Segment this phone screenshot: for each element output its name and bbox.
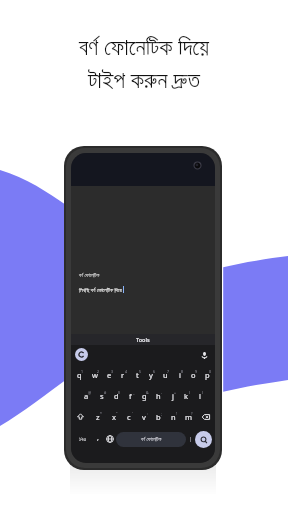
staticText: t [136, 370, 139, 380]
staticText: 5 [139, 369, 142, 374]
staticText: 6 [153, 369, 156, 374]
staticText: 3 [111, 369, 114, 374]
button[interactable]: ? [181, 406, 196, 427]
staticText: l [199, 391, 201, 401]
button[interactable]: + [165, 385, 179, 406]
button[interactable]: 5 [130, 364, 144, 385]
button[interactable]: 1 [72, 364, 87, 385]
staticText: q [77, 370, 82, 380]
staticText: ; [161, 411, 162, 416]
staticText: 0 [209, 369, 212, 374]
staticText: 2 [97, 369, 100, 374]
staticText: বর্ণ ফোনেটিক [141, 436, 162, 443]
button[interactable]: Backspace [196, 406, 215, 427]
staticText: বর্ণ ফোনেটিক দিয়ে [79, 30, 209, 61]
staticText: f [129, 391, 132, 401]
button[interactable]: _ [123, 385, 137, 406]
staticText: $ [118, 390, 121, 395]
staticText: w [92, 370, 98, 380]
staticText: h [156, 391, 161, 401]
staticText: c [127, 412, 131, 422]
staticText: " [116, 411, 118, 416]
staticText: বর্ণ ফোনেটিক [79, 272, 100, 279]
staticText: ! [176, 411, 177, 416]
staticText: _ [133, 390, 135, 395]
staticText: i [179, 370, 181, 380]
button[interactable]: Search [195, 431, 212, 448]
button[interactable]: 7 [158, 364, 172, 385]
button[interactable]: & [137, 385, 151, 406]
staticText: x [112, 412, 116, 422]
staticText: @ [88, 390, 92, 395]
staticText: * [100, 411, 102, 416]
staticText: y [149, 370, 153, 380]
staticText: ) [202, 390, 204, 395]
button[interactable]: Tools [71, 334, 215, 345]
staticText: g [142, 391, 147, 401]
button[interactable]: : [136, 406, 151, 427]
staticText: ? [191, 411, 193, 416]
staticText: + [174, 390, 177, 395]
staticText: s [100, 391, 104, 401]
button[interactable]: ' [121, 406, 136, 427]
staticText: j [172, 391, 174, 401]
button[interactable]: * [90, 406, 106, 427]
button[interactable]: ( [179, 385, 193, 406]
staticText: & [146, 390, 149, 395]
staticText: r [121, 370, 125, 380]
staticText: 9 [195, 369, 198, 374]
button[interactable]: Voice input [198, 349, 210, 361]
button[interactable]: - [151, 385, 165, 406]
staticText: : [147, 411, 148, 416]
button[interactable]: বর্ণ ফোনেটিক [116, 432, 186, 447]
staticText: ' [132, 411, 133, 416]
staticText: e [107, 370, 112, 380]
button[interactable]: $ [109, 385, 123, 406]
button[interactable]: @ [79, 385, 94, 406]
button[interactable]: 0 [200, 364, 214, 385]
staticText: ( [189, 390, 191, 395]
button[interactable]: 3 [102, 364, 116, 385]
button[interactable]: 8 [172, 364, 186, 385]
staticText: ১২৩ [79, 437, 87, 442]
staticText: m [185, 412, 193, 422]
staticText: b [156, 412, 161, 422]
staticText: | [189, 435, 193, 443]
button[interactable]: Change language [103, 427, 116, 451]
button[interactable]: 2 [87, 364, 102, 385]
staticText: লিখছি বর্ণ ফোনেটিক দিয়ে [79, 286, 122, 293]
staticText: # [104, 390, 107, 395]
button[interactable]: 6 [144, 364, 158, 385]
staticText: o [191, 370, 196, 380]
staticText: v [142, 412, 146, 422]
staticText: Tools [136, 336, 150, 343]
staticText: a [84, 391, 89, 401]
staticText: z [96, 412, 100, 422]
staticText: টাইপ করুন দ্রুত [88, 63, 200, 94]
staticText: k [184, 391, 189, 401]
staticText: p [205, 370, 210, 380]
staticText: , [97, 433, 99, 443]
button[interactable]: ) [193, 385, 207, 406]
staticText: 7 [167, 369, 170, 374]
button[interactable]: 9 [186, 364, 200, 385]
button[interactable]: ; [151, 406, 166, 427]
button[interactable]: ১২৩ [74, 427, 92, 451]
button[interactable]: Keyboard switcher [75, 348, 88, 361]
staticText: d [114, 391, 119, 401]
staticText: - [161, 390, 163, 395]
staticText: 1 [81, 369, 84, 374]
button[interactable]: # [94, 385, 109, 406]
button[interactable]: Shift [71, 406, 90, 427]
staticText: n [171, 412, 176, 422]
staticText: 8 [181, 369, 184, 374]
staticText: 4 [125, 369, 128, 374]
button[interactable]: " [106, 406, 121, 427]
button[interactable]: 4 [116, 364, 130, 385]
button[interactable]: , [92, 427, 103, 451]
staticText: u [163, 370, 168, 380]
button[interactable]: ! [166, 406, 181, 427]
